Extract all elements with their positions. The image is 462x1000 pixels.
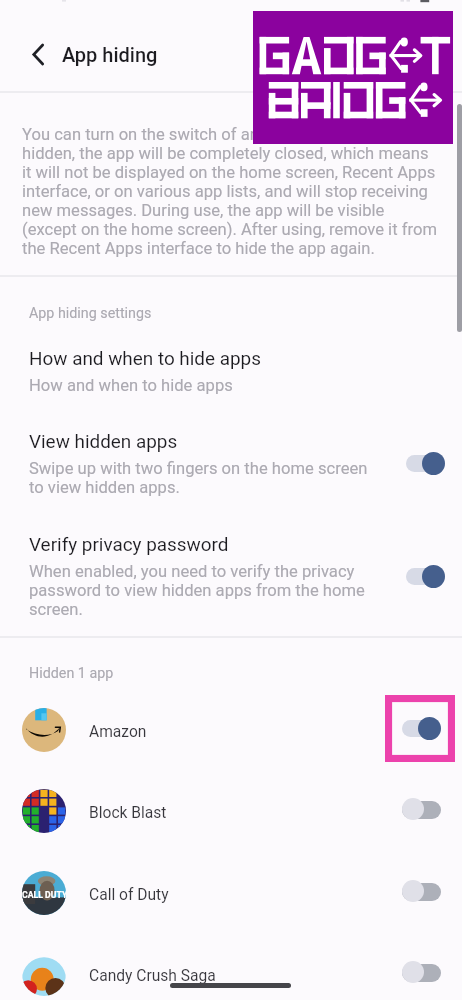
button[interactable]: Amazon bbox=[0, 701, 462, 782]
staticText: (except on the home screen). After using… bbox=[22, 220, 437, 239]
staticText: screen. bbox=[29, 600, 83, 619]
button[interactable]: CALL DUTY bbox=[0, 864, 462, 945]
button[interactable]: Back bbox=[20, 36, 57, 73]
staticText: Amazon bbox=[89, 723, 147, 741]
staticText: password to view hidden apps from the ho… bbox=[29, 581, 365, 600]
staticText: App hiding settings bbox=[29, 305, 152, 322]
button[interactable]: Toggle bbox=[398, 880, 440, 904]
staticText: to view hidden apps. bbox=[29, 478, 180, 497]
staticText: You can turn on the switch of an app to … bbox=[22, 125, 332, 144]
button[interactable]: Block Blast bbox=[0, 782, 462, 863]
staticText: CALL DUTY bbox=[22, 890, 66, 900]
staticText: it will not be displayed on the home scr… bbox=[22, 163, 436, 182]
button[interactable]: Toggle bbox=[402, 452, 444, 476]
staticText: Call of Duty bbox=[89, 886, 169, 904]
staticText: App hiding bbox=[62, 43, 158, 66]
staticText: How and when to hide apps bbox=[29, 347, 261, 369]
staticText: Candy Crush Saga bbox=[89, 967, 216, 985]
staticText: new messages. During use, the app will b… bbox=[22, 201, 385, 220]
button[interactable]: Toggle bbox=[402, 565, 444, 589]
button[interactable]: Toggle bbox=[398, 961, 440, 985]
button[interactable]: Candy Crush Saga bbox=[0, 945, 462, 1000]
staticText: Verify privacy password bbox=[29, 533, 229, 555]
button[interactable]: Toggle bbox=[398, 717, 440, 741]
staticText: interface, or on various app lists, and … bbox=[22, 182, 428, 201]
staticText: Swipe up with two fingers on the home sc… bbox=[29, 459, 368, 478]
button[interactable]: Toggle bbox=[398, 798, 440, 822]
staticText: When enabled, you need to verify the pri… bbox=[29, 562, 355, 581]
staticText: How and when to hide apps bbox=[29, 376, 233, 395]
staticText: Hidden 1 app bbox=[29, 665, 114, 682]
staticText: View hidden apps bbox=[29, 430, 178, 452]
staticText: Block Blast bbox=[89, 804, 167, 822]
staticText: the Recent Apps interface to hide the ap… bbox=[22, 239, 375, 258]
staticText: hidden, the app will be completely close… bbox=[22, 144, 429, 163]
